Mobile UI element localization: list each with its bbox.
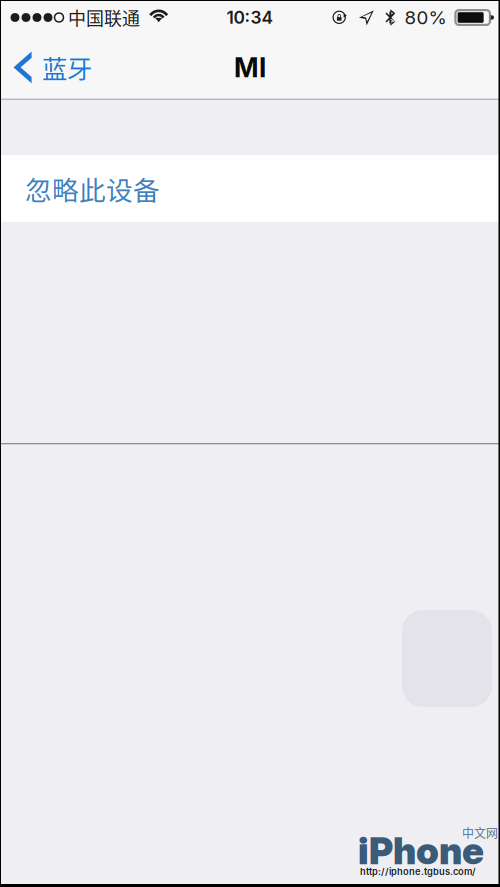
button[interactable]: 蓝牙 <box>0 35 140 99</box>
staticText: 中文网 <box>462 824 498 841</box>
button[interactable]: 忽略此设备 <box>0 155 500 222</box>
staticText: 中国联通 <box>68 4 140 31</box>
staticText: 忽略此设备 <box>25 169 160 208</box>
staticText: MI <box>234 51 266 84</box>
staticText: 蓝牙 <box>42 49 92 86</box>
staticText: 10:34 <box>226 7 273 28</box>
staticText: iPhone <box>358 828 484 873</box>
staticText: 80% <box>404 6 446 29</box>
staticText: http://iphone.tgbus.com/ <box>360 866 476 877</box>
